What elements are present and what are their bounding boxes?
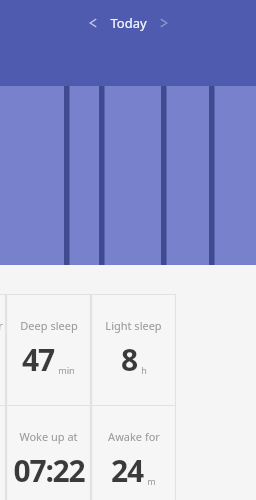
staticText: 24: [111, 450, 143, 491]
staticText: Today: [110, 14, 147, 32]
button[interactable]: Today: [104, 14, 153, 32]
button[interactable]: Light sleep: [91, 294, 176, 405]
staticText: Time asleep for: [0, 318, 3, 333]
button[interactable]: Previous day: [82, 12, 104, 34]
button[interactable]: Woke up at: [6, 405, 91, 500]
button[interactable]: Fell asleep at: [0, 405, 6, 500]
staticText: 8: [121, 339, 137, 380]
staticText: Light sleep: [105, 318, 162, 333]
button[interactable]: Sleep graph: [0, 86, 256, 265]
staticText: Woke up at: [19, 429, 78, 444]
staticText: min: [58, 364, 75, 376]
button[interactable]: Time asleep for: [0, 294, 6, 405]
button[interactable]: Awake for: [91, 405, 176, 500]
staticText: m: [147, 475, 156, 487]
button[interactable]: Deep sleep: [6, 294, 91, 405]
staticText: h: [141, 364, 147, 376]
button[interactable]: Next day: [153, 12, 175, 34]
staticText: 47: [22, 339, 54, 380]
staticText: 07:22: [13, 450, 85, 491]
staticText: Deep sleep: [20, 318, 78, 333]
staticText: Awake for: [108, 429, 160, 444]
